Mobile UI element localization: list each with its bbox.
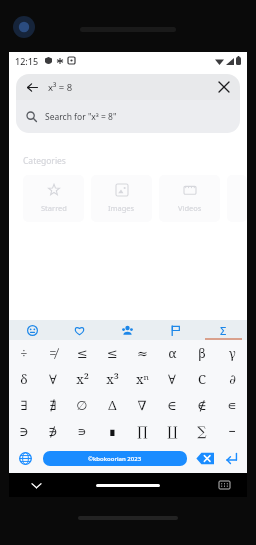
staticText: Categories [23, 155, 66, 167]
staticText: C [198, 370, 206, 388]
button[interactable]: γ [217, 340, 247, 366]
staticText: Σ [220, 323, 227, 338]
staticText: ÷ [20, 344, 28, 362]
button[interactable]: Starred [23, 175, 84, 222]
staticText: ≠ [49, 344, 57, 362]
staticText: x³ [106, 370, 119, 388]
button[interactable]: ∈ [157, 392, 187, 418]
button[interactable]: C [187, 366, 217, 392]
staticText: ≤ [107, 346, 118, 361]
button[interactable]: ©kbokoorian 2023 [43, 451, 187, 466]
staticText: ≤ [77, 346, 88, 361]
button[interactable]: ∍ [67, 418, 97, 444]
button[interactable]: xⁿ [127, 366, 157, 392]
button[interactable]: ∀ [38, 366, 67, 392]
button[interactable]: Switch keyboard [217, 478, 231, 492]
staticText: Search for "x³ = 8" [45, 111, 117, 123]
staticText: ©kbokoorian 2023 [88, 455, 142, 463]
staticText: Starred [41, 203, 67, 213]
button[interactable]: x² [67, 366, 97, 392]
staticText: 12:15 [15, 55, 39, 67]
button[interactable]: ∀ [157, 366, 187, 392]
staticText: ∋ [19, 424, 29, 439]
button[interactable]: ∃ [9, 392, 38, 418]
staticText: ∇ [137, 398, 147, 413]
staticText: ∍ [77, 424, 87, 439]
button[interactable]: ∑ [187, 418, 217, 444]
staticText: β [198, 344, 206, 362]
button[interactable]: Favorites [56, 320, 103, 340]
button[interactable]: ∅ [67, 392, 97, 418]
button[interactable]: Hide keyboard [29, 478, 43, 492]
staticText: ∀ [168, 372, 176, 387]
button[interactable]: Δ [97, 392, 127, 418]
staticText: x³ = 8 [48, 81, 73, 94]
staticText: ∎ [108, 424, 117, 439]
button[interactable]: ÷ [9, 340, 38, 366]
staticText: ∀ [49, 372, 57, 387]
button[interactable]: ∂ [217, 366, 247, 392]
button[interactable]: Back [16, 74, 240, 100]
button[interactable]: ∋ [9, 418, 38, 444]
button[interactable]: Math symbols [199, 320, 247, 340]
button[interactable]: − [217, 418, 247, 444]
staticText: − [228, 422, 236, 440]
button[interactable]: People [103, 320, 151, 340]
staticText: ∉ [197, 398, 207, 413]
button[interactable]: x³ [97, 366, 127, 392]
staticText: Δ [108, 396, 117, 414]
staticText: x² [76, 370, 89, 388]
button[interactable]: Images [91, 175, 152, 222]
staticText: ∌ [48, 424, 58, 439]
staticText: Images [108, 203, 135, 213]
button[interactable]: ∊ [217, 392, 247, 418]
staticText: ∑ [197, 424, 207, 439]
staticText: xⁿ [136, 370, 149, 388]
staticText: Videos [178, 203, 202, 213]
staticText: ∊ [227, 398, 237, 413]
staticText: ∅ [76, 398, 88, 413]
button[interactable]: Clear [216, 79, 232, 95]
staticText: ∈ [167, 398, 177, 413]
button[interactable]: δ [9, 366, 38, 392]
button[interactable]: ≤ [97, 340, 127, 366]
staticText: α [168, 344, 177, 362]
staticText: ∐ [167, 424, 178, 439]
staticText: ≈ [137, 346, 148, 361]
button[interactable]: ∌ [38, 418, 67, 444]
staticText: ∂ [229, 372, 236, 387]
staticText: δ [20, 370, 28, 388]
button[interactable]: α [157, 340, 187, 366]
button[interactable]: β [187, 340, 217, 366]
button[interactable]: ∇ [127, 392, 157, 418]
button[interactable]: ∄ [38, 392, 67, 418]
staticText: ∃ [20, 398, 28, 413]
button[interactable]: Flags [151, 320, 199, 340]
button[interactable]: Switch language [15, 448, 35, 468]
button[interactable]: Videos [159, 175, 220, 222]
button[interactable]: ∐ [157, 418, 187, 444]
staticText: ∄ [49, 398, 57, 413]
button[interactable]: Emoji [9, 320, 56, 340]
button[interactable]: Backspace [195, 451, 215, 466]
button[interactable]: ≈ [127, 340, 157, 366]
button[interactable]: Back [24, 79, 40, 95]
staticText: γ [229, 344, 236, 362]
button[interactable]: ∉ [187, 392, 217, 418]
button[interactable]: ∎ [97, 418, 127, 444]
button[interactable]: Enter [221, 448, 241, 468]
button[interactable]: Search for "x³ = 8" [16, 100, 240, 133]
button[interactable]: ≠ [38, 340, 67, 366]
button[interactable]: ∏ [127, 418, 157, 444]
staticText: ∏ [137, 424, 148, 439]
button[interactable]: ≤ [67, 340, 97, 366]
